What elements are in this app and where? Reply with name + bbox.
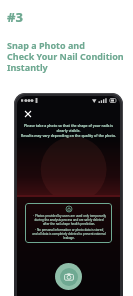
button[interactable]: Close: [22, 108, 33, 119]
button[interactable]: Privacy: [29, 206, 108, 240]
staticText: #3: [7, 8, 24, 26]
staticText: ・Photos provided by users are used only …: [32, 214, 106, 226]
staticText: Snap a Photo and Check Your Nail Conditi…: [7, 39, 124, 73]
other: Privacy: [66, 206, 72, 212]
staticText: Please take a photo so that the shape of…: [21, 123, 116, 138]
staticText: ・No personal information or photo data i…: [32, 228, 106, 240]
button[interactable]: Take photo: [55, 263, 82, 290]
